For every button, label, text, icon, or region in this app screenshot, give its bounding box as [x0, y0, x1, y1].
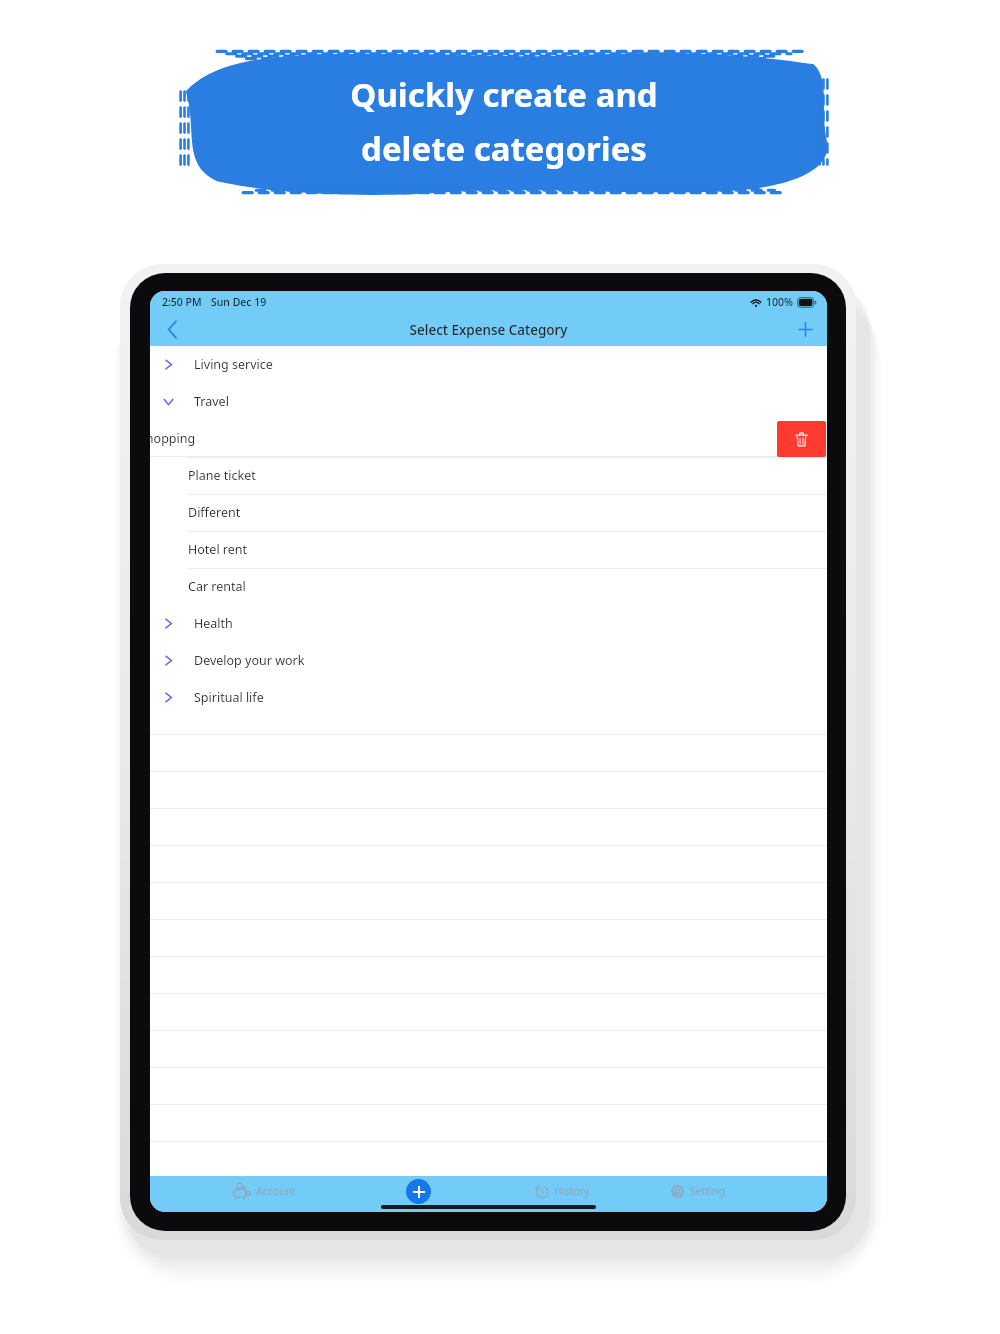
button[interactable]: Car rental: [150, 568, 827, 605]
staticText: Quickly create and: [178, 72, 830, 117]
staticText: Hotel rent: [188, 541, 248, 558]
staticText: Car rental: [188, 578, 246, 595]
staticText: Develop your work: [194, 652, 305, 669]
staticText: Travel: [194, 393, 229, 410]
staticText: 100%: [766, 295, 793, 309]
staticText: Plane ticket: [188, 467, 256, 484]
staticText: Setting: [690, 1184, 725, 1198]
button[interactable]: Back: [150, 313, 194, 346]
staticText: Different: [188, 504, 241, 521]
staticText: Living service: [194, 356, 273, 373]
staticText: Spiritual life: [194, 689, 264, 706]
button[interactable]: Add category: [783, 313, 827, 346]
button[interactable]: Add: [406, 1179, 431, 1204]
button[interactable]: History: [534, 1180, 590, 1202]
button[interactable]: Spiritual life: [150, 679, 827, 716]
button[interactable]: Delete: [777, 421, 826, 457]
button[interactable]: Different: [150, 494, 827, 531]
button[interactable]: Hotel rent: [150, 531, 827, 568]
staticText: 2:50 PM: [162, 295, 202, 309]
staticText: Select Expense Category: [150, 321, 827, 339]
staticText: Health: [194, 615, 233, 632]
staticText: delete categories: [178, 126, 830, 171]
button[interactable]: Health: [150, 605, 827, 642]
button[interactable]: Travel: [150, 383, 827, 420]
staticText: Account: [256, 1184, 296, 1198]
button[interactable]: Develop your work: [150, 642, 827, 679]
staticText: History: [554, 1184, 590, 1198]
button[interactable]: Setting: [670, 1180, 725, 1202]
button[interactable]: Account: [232, 1180, 296, 1202]
button[interactable]: Living service: [150, 346, 827, 383]
button[interactable]: Shopping: [150, 420, 827, 457]
staticText: Shopping: [150, 430, 196, 447]
button[interactable]: Plane ticket: [150, 457, 827, 494]
staticText: Sun Dec 19: [211, 295, 267, 309]
